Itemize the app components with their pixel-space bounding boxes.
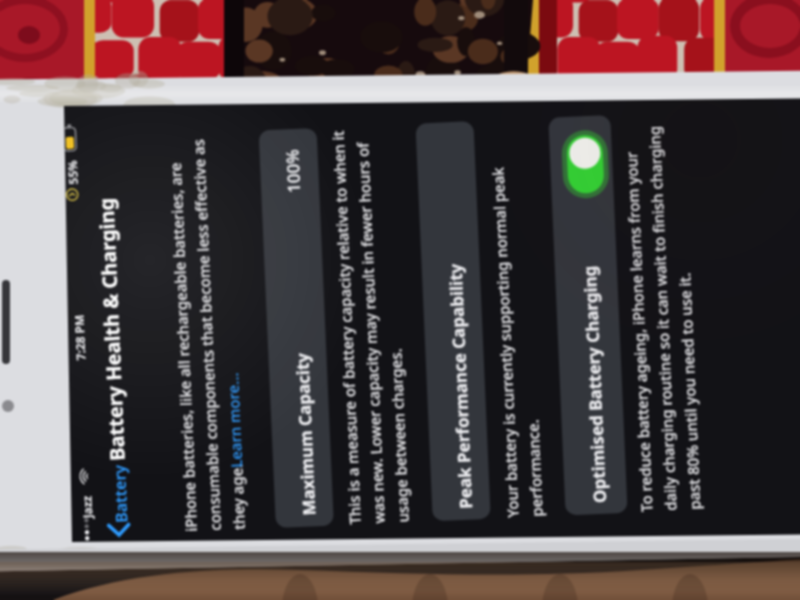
button[interactable]: iPhone Battery Health and Charging scree…: [0, 0, 800, 600]
